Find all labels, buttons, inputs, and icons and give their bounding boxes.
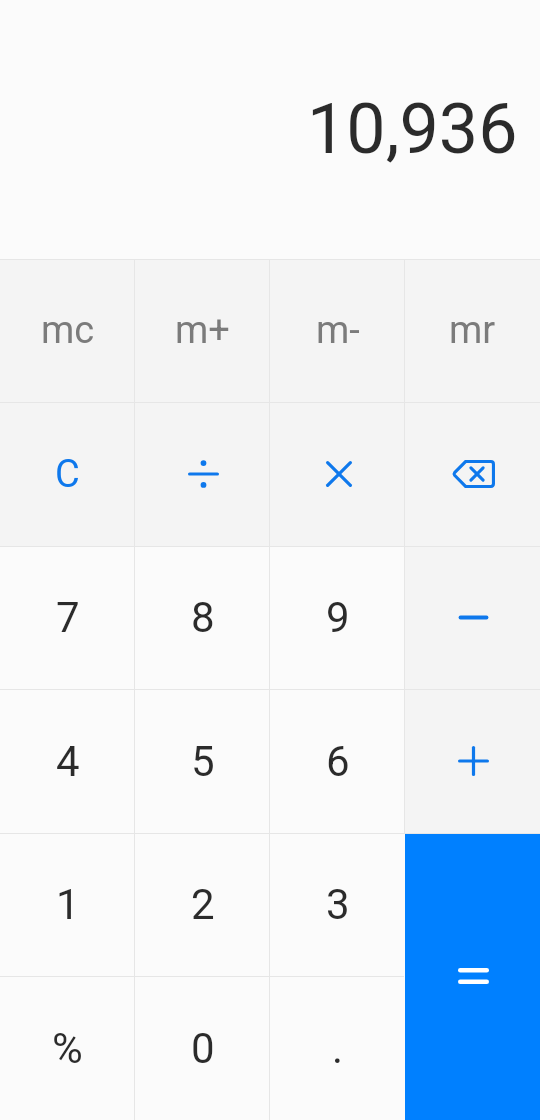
- button[interactable]: 5: [135, 689, 270, 833]
- staticText: m+: [175, 308, 230, 353]
- staticText: 8: [191, 593, 215, 642]
- button[interactable]: Minus: [405, 546, 540, 689]
- button[interactable]: %: [0, 976, 135, 1120]
- staticText: 3: [326, 880, 350, 929]
- staticText: mr: [449, 308, 496, 353]
- button[interactable]: 7: [0, 546, 135, 689]
- button[interactable]: Equals: [405, 833, 540, 1120]
- button[interactable]: 0: [135, 976, 270, 1120]
- button[interactable]: Divide: [135, 402, 270, 546]
- button[interactable]: 9: [270, 546, 405, 689]
- button[interactable]: .: [270, 976, 405, 1120]
- button[interactable]: 2: [135, 833, 270, 976]
- staticText: 4: [56, 737, 80, 786]
- staticText: C: [55, 452, 80, 497]
- staticText: .: [332, 1024, 344, 1073]
- staticText: 0: [191, 1024, 215, 1073]
- button[interactable]: 4: [0, 689, 135, 833]
- button[interactable]: mc: [0, 259, 135, 402]
- staticText: 9: [326, 593, 350, 642]
- staticText: %: [52, 1024, 83, 1073]
- staticText: mc: [41, 308, 95, 353]
- staticText: 1: [56, 880, 80, 929]
- button[interactable]: Backspace: [405, 402, 540, 546]
- button[interactable]: m-: [270, 259, 405, 402]
- button[interactable]: Multiply: [270, 402, 405, 546]
- button[interactable]: C: [0, 402, 135, 546]
- button[interactable]: 1: [0, 833, 135, 976]
- button[interactable]: 3: [270, 833, 405, 976]
- staticText: 7: [56, 593, 80, 642]
- staticText: 10,936: [307, 88, 518, 170]
- staticText: 5: [191, 737, 215, 786]
- button[interactable]: Plus: [405, 689, 540, 833]
- button[interactable]: m+: [135, 259, 270, 402]
- staticText: 2: [191, 880, 215, 929]
- staticText: 6: [326, 737, 350, 786]
- button[interactable]: mr: [405, 259, 540, 402]
- button[interactable]: 8: [135, 546, 270, 689]
- staticText: m-: [316, 308, 360, 353]
- button[interactable]: 6: [270, 689, 405, 833]
